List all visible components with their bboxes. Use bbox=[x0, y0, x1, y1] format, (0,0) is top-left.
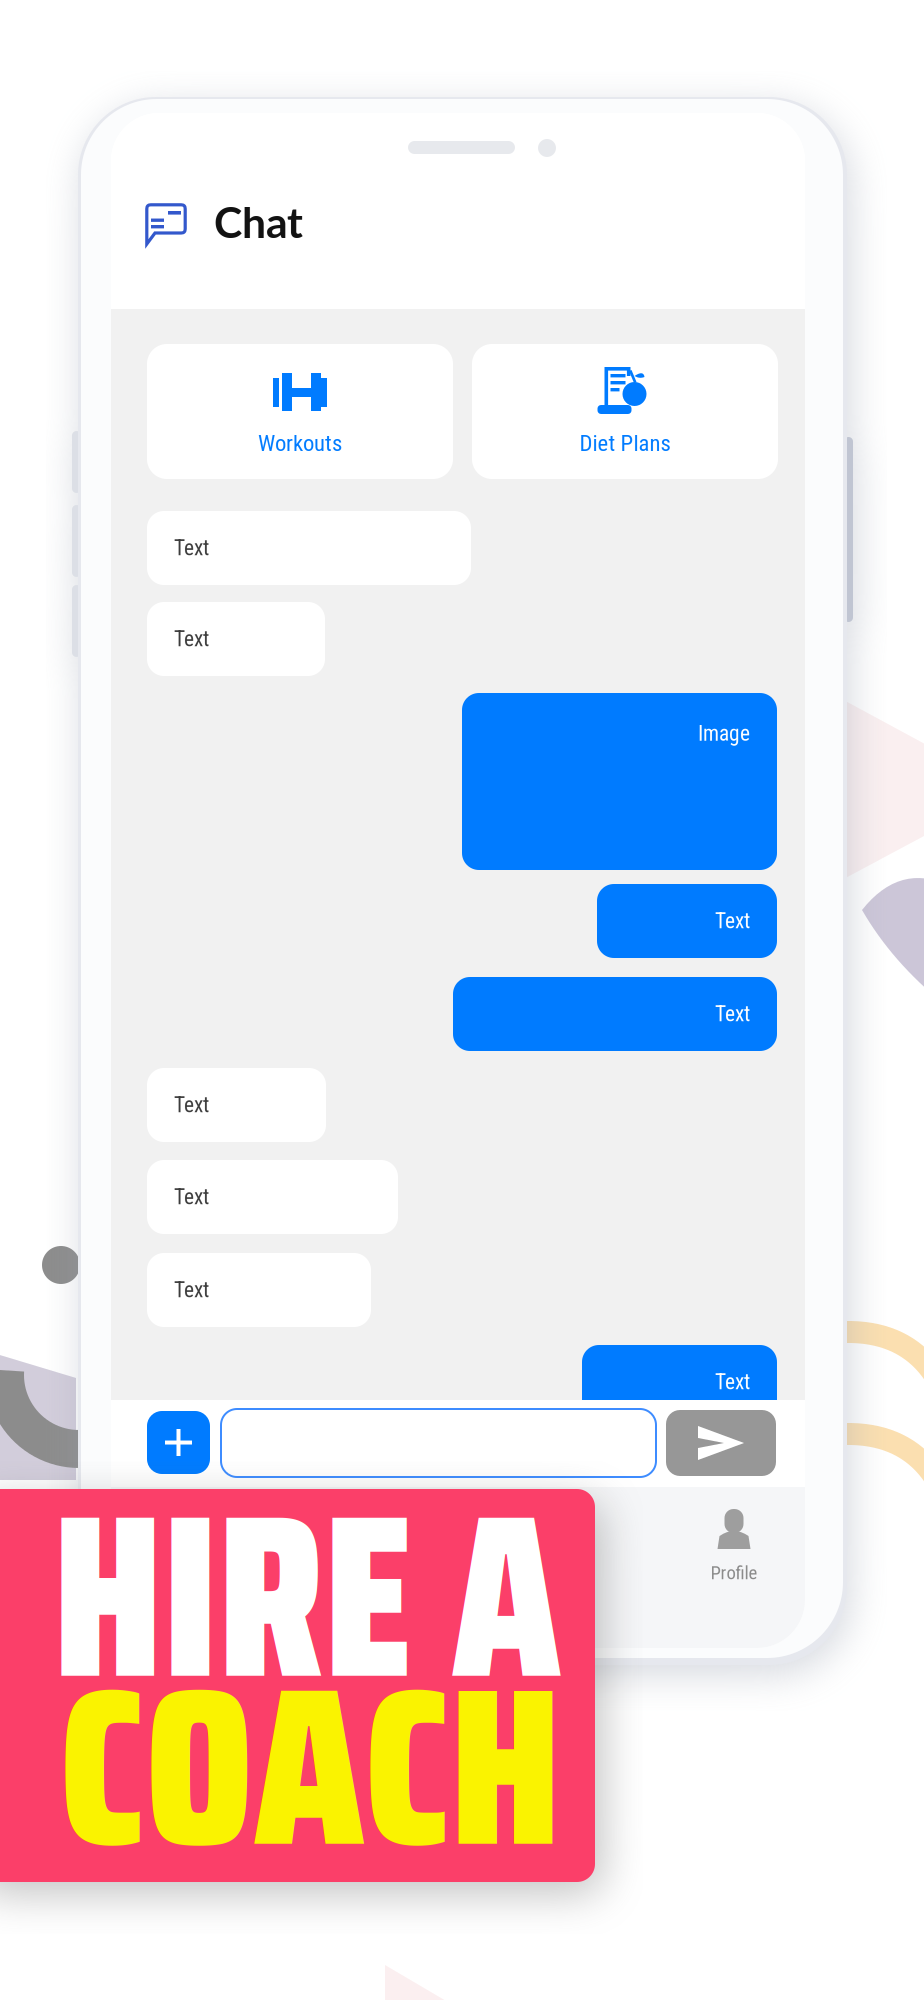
button[interactable]: Workouts bbox=[147, 344, 453, 479]
button[interactable]: Profile bbox=[654, 1487, 814, 1607]
staticText: Workouts bbox=[258, 430, 342, 457]
button[interactable]: Send bbox=[666, 1410, 776, 1476]
staticText: COACH bbox=[59, 1592, 561, 1928]
staticText: Text bbox=[715, 908, 750, 933]
staticText: Text bbox=[715, 1369, 750, 1394]
staticText: HIRE A bbox=[53, 1415, 561, 1747]
staticText: Image bbox=[698, 721, 750, 746]
button[interactable]: Message bbox=[221, 1409, 656, 1477]
button[interactable]: Add attachment bbox=[147, 1411, 210, 1474]
staticText: Text bbox=[174, 626, 209, 651]
staticText: Chat bbox=[214, 196, 303, 247]
staticText: Profile bbox=[710, 1562, 757, 1584]
staticText: Text bbox=[174, 1277, 209, 1302]
staticText: Text bbox=[174, 1184, 209, 1209]
staticText: Text bbox=[715, 1001, 750, 1026]
button[interactable]: Diet Plans bbox=[472, 344, 778, 479]
staticText: Diet Plans bbox=[579, 430, 670, 457]
staticText: Text bbox=[174, 1092, 209, 1117]
staticText: Text bbox=[174, 535, 209, 560]
